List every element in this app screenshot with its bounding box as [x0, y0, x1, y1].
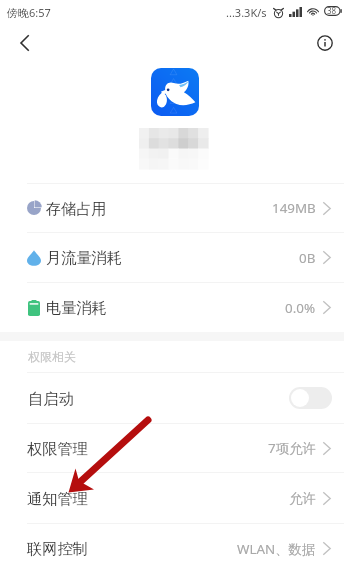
- button[interactable]: 存储占用: [0, 184, 344, 232]
- staticText: 存储占用: [46, 199, 107, 218]
- staticText: 月流量消耗: [46, 248, 122, 267]
- button[interactable]: Back: [4, 23, 44, 63]
- button[interactable]: 电量消耗: [0, 283, 344, 332]
- button[interactable]: 权限管理: [0, 424, 344, 472]
- button[interactable]: Info: [305, 23, 344, 63]
- staticText: 通知管理: [27, 489, 88, 508]
- staticText: ...3.3K/s: [226, 5, 267, 20]
- staticText: 傍晚6:57: [7, 5, 51, 20]
- staticText: 0.0%: [285, 299, 316, 317]
- button[interactable]: 通知管理: [0, 473, 344, 523]
- staticText: WLAN、数据: [237, 540, 316, 558]
- staticText: 0B: [299, 249, 316, 267]
- staticText: 7项允许: [268, 439, 316, 457]
- staticText: 联网控制: [27, 539, 88, 558]
- staticText: 权限管理: [27, 439, 88, 458]
- staticText: 电量消耗: [46, 298, 107, 317]
- staticText: 38: [327, 5, 337, 16]
- staticText: 权限相关: [28, 349, 76, 364]
- button[interactable]: 月流量消耗: [0, 233, 344, 282]
- button[interactable]: 联网控制: [0, 524, 344, 568]
- staticText: 允许: [289, 490, 316, 507]
- button[interactable]: 自启动: [0, 373, 344, 423]
- staticText: 149MB: [272, 199, 316, 217]
- staticText: 自启动: [28, 389, 74, 408]
